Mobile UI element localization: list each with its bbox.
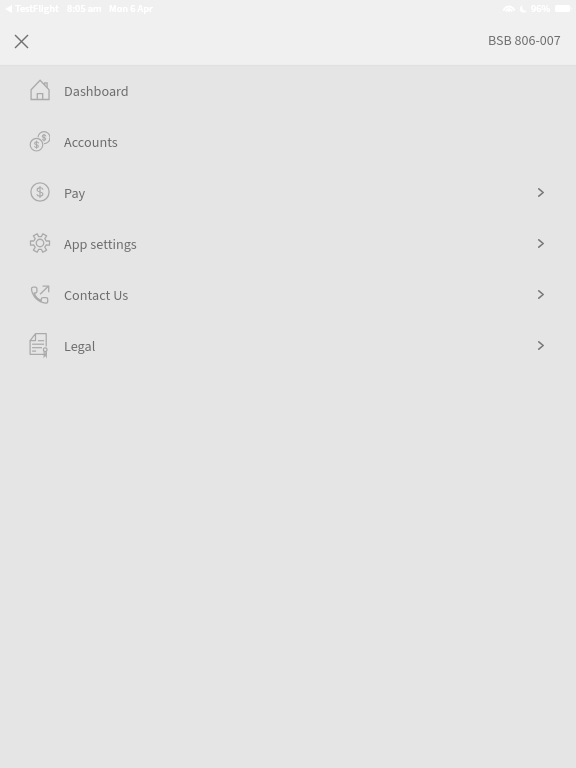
staticText: App settings <box>64 234 137 254</box>
staticText: Legal <box>64 336 96 356</box>
button[interactable]: Close <box>6 26 36 56</box>
button[interactable]: Legal <box>0 320 576 371</box>
staticText: Pay <box>64 183 86 203</box>
staticText: Contact Us <box>64 285 129 305</box>
staticText: TestFlight <box>15 1 59 16</box>
staticText: 8:05 am <box>67 1 102 16</box>
staticText: Accounts <box>64 132 118 152</box>
button[interactable]: App settings <box>0 218 576 269</box>
staticText: 96% <box>531 1 551 16</box>
staticText: Dashboard <box>64 81 129 101</box>
button[interactable]: Pay <box>0 167 576 218</box>
button[interactable]: Contact Us <box>0 269 576 320</box>
button[interactable]: Dashboard <box>0 65 576 116</box>
staticText: BSB 806-007 <box>488 31 561 51</box>
button[interactable]: Accounts <box>0 116 576 167</box>
staticText: Mon 6 Apr <box>109 1 153 16</box>
